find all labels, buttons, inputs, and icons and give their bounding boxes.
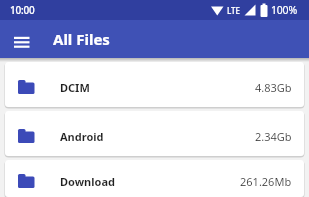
staticText: Android xyxy=(60,129,104,144)
staticText: Download xyxy=(60,174,115,189)
staticText: DCIM xyxy=(60,80,90,95)
staticText: 261.26Mb xyxy=(240,174,292,189)
staticText: 100% xyxy=(271,3,297,17)
button[interactable]: DCIM xyxy=(5,62,304,107)
staticText: 4.83Gb xyxy=(255,80,292,95)
staticText: 2.34Gb xyxy=(255,129,292,144)
button[interactable]: Android xyxy=(5,111,304,156)
button[interactable]: Download xyxy=(5,160,304,197)
button[interactable] xyxy=(7,25,35,53)
staticText: 10:00 xyxy=(10,3,35,17)
staticText: All Files xyxy=(53,29,110,49)
staticText: LTE xyxy=(227,5,241,16)
